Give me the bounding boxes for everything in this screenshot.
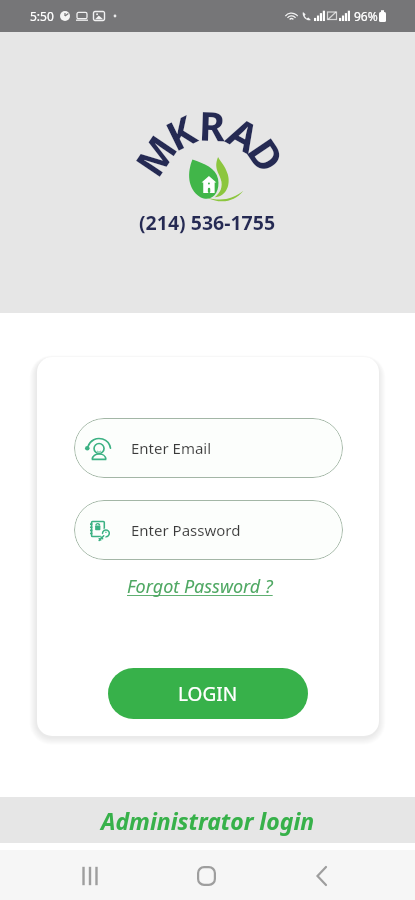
staticText: K <box>156 102 204 162</box>
staticText: A <box>219 104 269 164</box>
staticText: D <box>236 127 298 183</box>
staticText: M <box>122 124 188 186</box>
staticText: LOGIN <box>178 681 238 707</box>
button[interactable]: Back <box>299 853 344 898</box>
staticText: 5:50 <box>30 8 54 24</box>
staticText: Enter Password <box>131 520 241 540</box>
button[interactable]: Enter Email <box>74 418 343 478</box>
button[interactable]: Home <box>184 853 229 898</box>
button[interactable]: Forgot Password ? <box>123 572 277 601</box>
button[interactable]: LOGIN <box>108 668 308 719</box>
staticText: Forgot Password ? <box>127 574 273 599</box>
staticText: (214) 536-1755 <box>139 209 276 236</box>
staticText: 96% <box>354 8 378 24</box>
staticText: Enter Email <box>131 438 212 458</box>
button[interactable]: Recents <box>67 853 112 898</box>
button[interactable]: Administrator login <box>0 797 415 843</box>
staticText: R <box>198 97 227 152</box>
button[interactable]: Enter Password <box>74 500 343 560</box>
staticText: Administrator login <box>101 805 315 836</box>
